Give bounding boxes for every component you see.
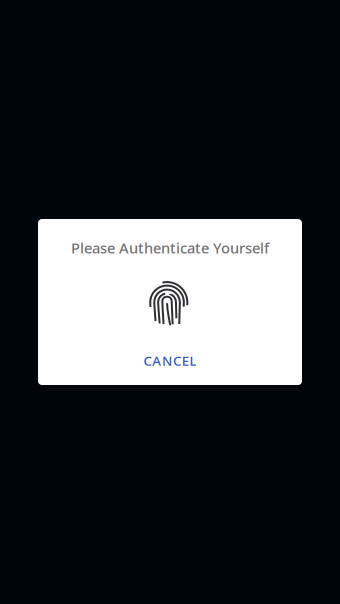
button[interactable]: CANCEL [126,344,214,376]
staticText: Please Authenticate Yourself [71,238,269,257]
staticText: CANCEL [143,352,196,369]
